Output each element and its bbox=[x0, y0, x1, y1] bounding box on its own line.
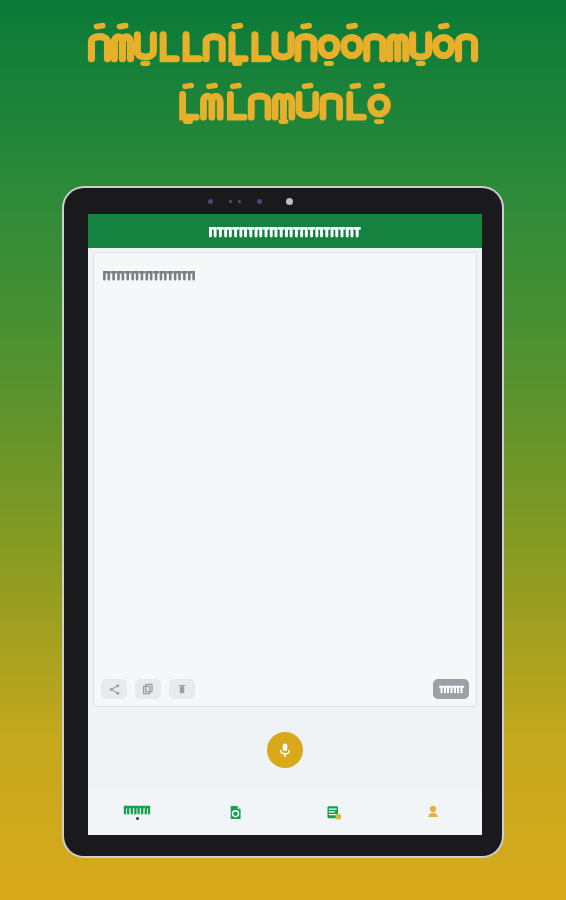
button[interactable]: Share bbox=[101, 679, 127, 699]
button[interactable] bbox=[88, 789, 186, 835]
button[interactable]: Notes bbox=[284, 789, 383, 835]
button[interactable]: Start voice input bbox=[267, 732, 303, 768]
button[interactable] bbox=[433, 679, 469, 699]
button[interactable]: Delete bbox=[169, 679, 195, 699]
button[interactable] bbox=[88, 214, 482, 248]
button[interactable]: Account bbox=[383, 789, 482, 835]
button[interactable]: Share bbox=[93, 252, 477, 707]
button[interactable]: Copy bbox=[135, 679, 161, 699]
button[interactable]: Documents bbox=[186, 789, 284, 835]
